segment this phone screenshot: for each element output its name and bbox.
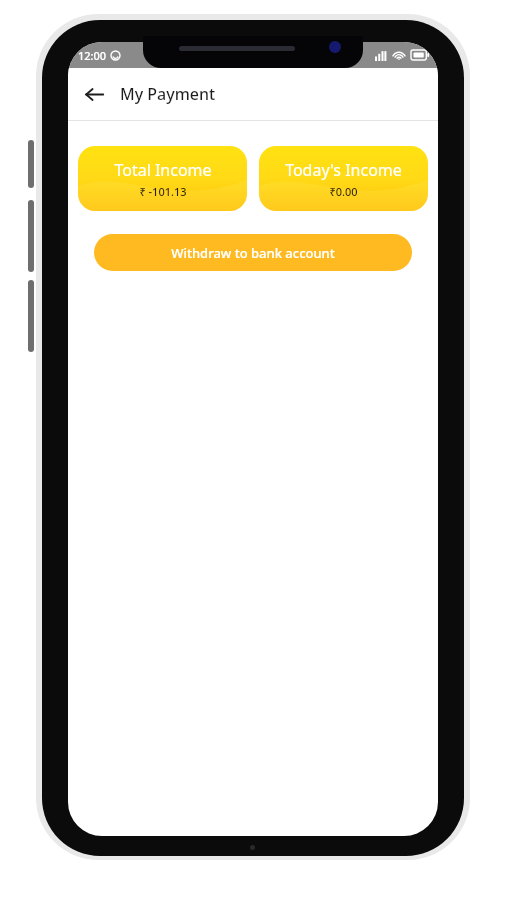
staticText: ₹ -101.13 [139, 184, 187, 199]
staticText: Total Income [114, 159, 212, 181]
staticText: Today's Income [285, 159, 402, 181]
button[interactable]: Withdraw to bank account [94, 234, 412, 271]
button[interactable]: Total Income [78, 146, 247, 211]
button[interactable]: Today's Income [259, 146, 428, 211]
staticText: 12:00 [78, 48, 107, 63]
button[interactable]: Back [74, 74, 114, 114]
staticText: My Payment [120, 83, 216, 105]
staticText: Withdraw to bank account [171, 244, 335, 262]
staticText: ₹0.00 [329, 184, 358, 199]
